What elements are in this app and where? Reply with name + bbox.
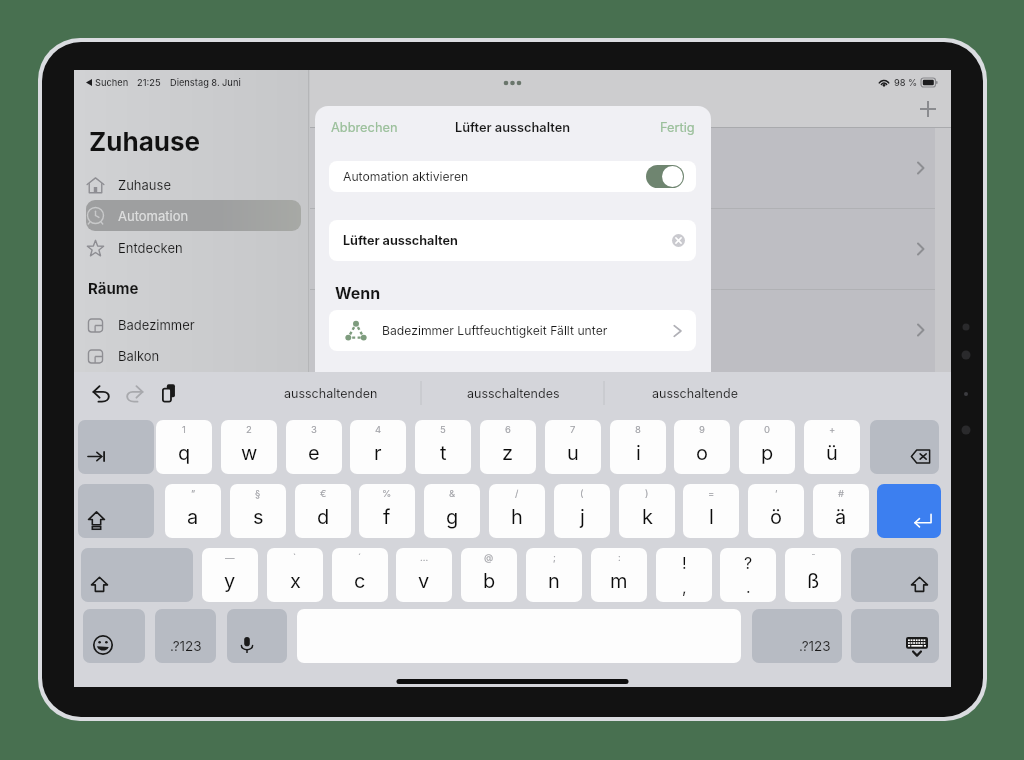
button[interactable]: — [202, 548, 258, 602]
staticText: 1 [182, 424, 186, 435]
button[interactable]: = [683, 484, 739, 538]
button[interactable]: § [230, 484, 286, 538]
button[interactable]: Lüfter ausschalten [329, 220, 696, 261]
staticText: l [709, 505, 714, 529]
staticText: s [253, 505, 264, 529]
staticText: j [580, 505, 585, 529]
button[interactable]: Balkon [86, 341, 301, 371]
button[interactable]: Shift [851, 548, 938, 602]
button[interactable]: Fertig [660, 114, 711, 141]
button[interactable]: ) [619, 484, 675, 538]
button[interactable]: Backspace [870, 420, 939, 474]
button[interactable]: 3 [286, 420, 342, 474]
staticText: ß [807, 569, 820, 593]
button[interactable]: Abbrechen [315, 114, 398, 141]
button[interactable]: .?123 [155, 609, 216, 663]
button[interactable]: Tab [78, 420, 154, 474]
staticText: / [515, 488, 519, 499]
button[interactable]: Caps lock [78, 484, 154, 538]
staticText: ü [826, 441, 838, 465]
staticText: 8 [635, 424, 641, 435]
staticText: Badezimmer [118, 317, 195, 333]
button[interactable]: ausschaltendes [422, 372, 604, 414]
button[interactable]: ! [656, 548, 712, 602]
button[interactable]: Emoji [83, 609, 145, 663]
button[interactable]: .?123 [752, 609, 842, 663]
button[interactable]: ausschaltenden [239, 372, 422, 414]
staticText: y [224, 569, 236, 593]
button[interactable]: Zuhause [86, 170, 301, 200]
staticText: = [708, 488, 715, 499]
button[interactable]: 8 [610, 420, 666, 474]
button[interactable]: 5 [415, 420, 471, 474]
staticText: ausschaltenden [284, 386, 378, 401]
staticText: k [642, 505, 653, 529]
button[interactable]: & [424, 484, 480, 538]
staticText: h [511, 505, 523, 529]
button[interactable]: ( [554, 484, 610, 538]
button[interactable]: Badezimmer [86, 310, 301, 340]
button[interactable]: 2 [221, 420, 277, 474]
button[interactable]: 4 [350, 420, 406, 474]
staticText: 6 [505, 424, 511, 435]
staticText: p [761, 441, 774, 465]
staticText: ( [580, 488, 584, 499]
button[interactable]: 1 [156, 420, 212, 474]
button[interactable]: Shift [81, 548, 193, 602]
button[interactable]: : [591, 548, 647, 602]
button[interactable]: 7 [545, 420, 601, 474]
staticText: Automation [118, 208, 189, 224]
button[interactable]: 0 [739, 420, 795, 474]
button[interactable]: Paste [160, 384, 178, 402]
staticText: w [241, 441, 258, 465]
staticText: r [374, 441, 382, 465]
button[interactable]: Hide keyboard [851, 609, 939, 663]
staticText: ä [835, 505, 847, 529]
button[interactable]: Entdecken [86, 233, 301, 263]
button[interactable]: ˜ [785, 548, 841, 602]
staticText: ? [744, 553, 753, 572]
button[interactable]: ’ [748, 484, 804, 538]
staticText: ö [770, 505, 782, 529]
staticText: Zuhause [118, 177, 171, 193]
staticText: o [696, 441, 708, 465]
staticText: ! [682, 553, 687, 572]
button[interactable]: ” [165, 484, 221, 538]
other: Clear [672, 234, 685, 247]
button[interactable]: Automation aktivieren [329, 161, 696, 192]
staticText: Lüfter ausschalten [343, 233, 458, 248]
button[interactable]: Undo [92, 384, 110, 402]
staticText: ausschaltende [652, 386, 738, 401]
button[interactable]: / [489, 484, 545, 538]
button[interactable]: 6 [480, 420, 536, 474]
button[interactable]: … [396, 548, 452, 602]
staticText: ’ [775, 488, 778, 499]
button[interactable]: Redo [126, 384, 144, 402]
button[interactable]: + [804, 420, 860, 474]
button[interactable]: ausschaltende [604, 372, 786, 414]
staticText: ˜ [811, 552, 816, 563]
button[interactable]: € [295, 484, 351, 538]
staticText: a [187, 505, 199, 529]
button[interactable]: Badezimmer Luftfeuchtigkeit Fällt unter [329, 310, 696, 351]
button[interactable]: Automation [86, 200, 301, 231]
staticText: Automation aktivieren [343, 169, 469, 184]
staticText: … [420, 552, 429, 563]
button[interactable]: ? [720, 548, 776, 602]
button[interactable]: ´ [332, 548, 388, 602]
button[interactable]: ` [267, 548, 323, 602]
staticText: & [449, 488, 456, 499]
button[interactable]: @ [461, 548, 517, 602]
button[interactable]: # [813, 484, 869, 538]
button[interactable]: % [359, 484, 415, 538]
button[interactable]: Return [877, 484, 941, 538]
button[interactable]: Dictate [227, 609, 287, 663]
staticText: % [382, 488, 392, 499]
staticText: m [610, 569, 628, 593]
button[interactable]: 9 [674, 420, 730, 474]
staticText: # [838, 488, 845, 499]
staticText: . [746, 577, 751, 596]
staticText: z [502, 441, 514, 465]
button[interactable]: ; [526, 548, 582, 602]
